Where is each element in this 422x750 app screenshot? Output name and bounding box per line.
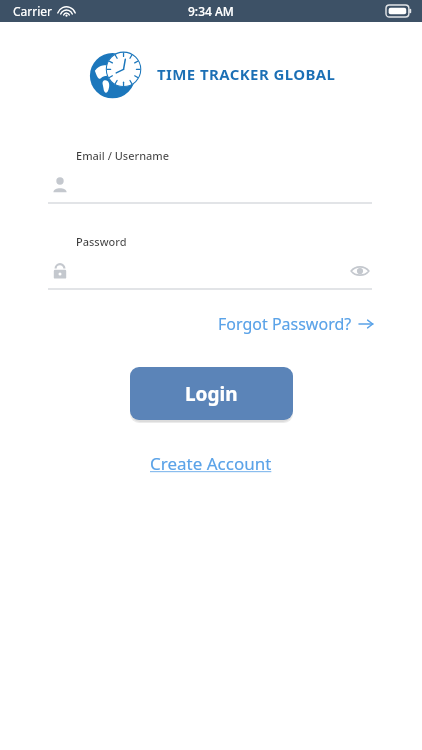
button[interactable]: Password	[48, 234, 372, 290]
staticText: Carrier	[13, 3, 53, 19]
button[interactable]: Create Account	[144, 448, 278, 479]
staticText: Password	[76, 234, 127, 249]
staticText: Login	[185, 381, 238, 407]
staticText: Forgot Password?	[218, 313, 352, 335]
staticText: 9:34 AM	[188, 3, 234, 19]
staticText: Email / Username	[76, 148, 170, 163]
button[interactable]: Email / Username	[48, 148, 372, 204]
button[interactable]: Show password	[348, 259, 372, 283]
button[interactable]: Login	[130, 367, 293, 420]
staticText: TIME TRACKER GLOBAL	[157, 64, 336, 84]
button[interactable]: Forgot Password?	[216, 311, 376, 337]
staticText: Create Account	[150, 452, 272, 475]
